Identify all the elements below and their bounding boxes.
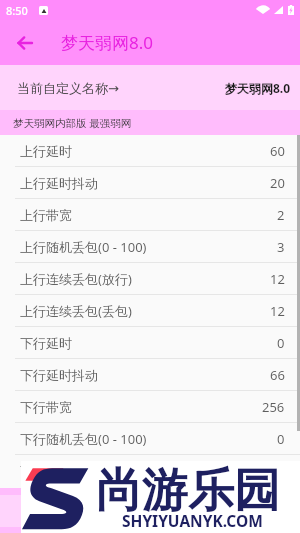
button[interactable]: 下行带宽 bbox=[0, 391, 300, 423]
staticText: 20 bbox=[270, 174, 285, 192]
button[interactable]: 保存 bbox=[0, 495, 300, 527]
staticText: 60 bbox=[270, 142, 285, 160]
button[interactable]: 下行延时 bbox=[0, 327, 300, 359]
staticText: 当前自定义名称→ bbox=[17, 80, 119, 96]
staticText: 下行带宽 bbox=[20, 399, 72, 415]
staticText: 8:50 bbox=[6, 3, 28, 18]
staticText: 尚游乐园 bbox=[96, 462, 280, 520]
staticText: 2 bbox=[277, 206, 285, 224]
staticText: 3 bbox=[277, 238, 285, 256]
button[interactable]: 上行带宽 bbox=[0, 199, 300, 231]
button[interactable]: 上行连续丢包(放行) bbox=[0, 263, 300, 295]
staticText: 梦天弱网内部版 最强弱网 bbox=[13, 116, 132, 130]
button[interactable]: Back bbox=[9, 29, 37, 57]
button[interactable]: 下行连续丢包(放行) bbox=[0, 455, 300, 487]
staticText: 保存 bbox=[137, 503, 163, 519]
staticText: 上行随机丢包(0 - 100) bbox=[20, 238, 147, 256]
staticText: 下行延时抖动 bbox=[20, 367, 98, 383]
staticText: 上行连续丢包(丢包) bbox=[20, 302, 132, 320]
staticText: 12 bbox=[270, 462, 285, 480]
button[interactable]: 上行延时 bbox=[0, 135, 300, 167]
button[interactable]: 上行延时抖动 bbox=[0, 167, 300, 199]
staticText: 12 bbox=[270, 302, 285, 320]
staticText: 256 bbox=[262, 398, 285, 416]
staticText: 下行连续丢包(放行) bbox=[20, 462, 132, 480]
button[interactable]: 下行延时抖动 bbox=[0, 359, 300, 391]
staticText: 下行随机丢包(0 - 100) bbox=[20, 430, 147, 448]
staticText: 上行连续丢包(放行) bbox=[20, 270, 132, 288]
staticText: 上行带宽 bbox=[20, 207, 72, 223]
staticText: 12 bbox=[270, 270, 285, 288]
staticText: 66 bbox=[270, 366, 285, 384]
staticText: 0 bbox=[277, 430, 285, 448]
button[interactable]: 当前自定义名称→ bbox=[0, 65, 300, 110]
button[interactable]: 上行连续丢包(丢包) bbox=[0, 295, 300, 327]
staticText: 下行延时 bbox=[20, 335, 72, 351]
button[interactable]: 下行随机丢包(0 - 100) bbox=[0, 423, 300, 455]
staticText: 梦天弱网8.0 bbox=[225, 80, 291, 96]
button[interactable]: 上行随机丢包(0 - 100) bbox=[0, 231, 300, 263]
staticText: 梦天弱网8.0 bbox=[61, 31, 154, 54]
staticText: 0 bbox=[277, 334, 285, 352]
staticText: 上行延时 bbox=[20, 143, 72, 159]
staticText: SHYIYUANYK.COM bbox=[122, 510, 263, 531]
staticText: 上行延时抖动 bbox=[20, 175, 98, 191]
